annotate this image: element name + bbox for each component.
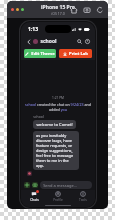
button[interactable] — [21, 8, 24, 11]
staticText: Send a message... — [43, 183, 77, 188]
button[interactable]: Print Lab — [59, 49, 92, 58]
staticText: Chats — [30, 198, 39, 202]
button[interactable]: Add attachment — [24, 182, 30, 188]
button[interactable]: Home — [70, 6, 78, 14]
staticText: Edit Theme — [31, 51, 55, 57]
staticText: Tools — [79, 198, 87, 202]
button[interactable] — [11, 8, 14, 11]
button[interactable]: Search — [76, 38, 83, 45]
staticText: 1:21 PM — [52, 96, 64, 100]
button[interactable]: Edit Theme — [24, 49, 56, 58]
staticText: welcome to Comet! — [36, 122, 73, 127]
button[interactable]: as you inevitably discover bugs, have fe… — [33, 131, 79, 170]
button[interactable]: Reaction — [27, 171, 32, 176]
button[interactable]: Tools — [71, 190, 95, 203]
button[interactable]: Chats — [22, 190, 46, 203]
staticText: as you inevitably discover bugs, have fe… — [36, 133, 76, 168]
button[interactable]: Profile — [46, 190, 70, 203]
button[interactable]: Rotate — [96, 6, 104, 14]
staticText: iPhone 15 Pro — [41, 4, 75, 11]
button[interactable]: Screenshot — [83, 6, 91, 14]
button[interactable]: Send a message... — [40, 181, 92, 189]
staticText: school — [33, 114, 44, 119]
button[interactable]: Back — [25, 38, 32, 45]
staticText: school created the chat on 9/24/23 and a… — [24, 102, 92, 112]
button[interactable] — [16, 8, 19, 11]
button[interactable]: Members — [84, 38, 91, 45]
staticText: school — [40, 38, 57, 45]
staticText: Profile — [53, 198, 63, 202]
button[interactable]: Camera — [32, 182, 38, 188]
staticText: iOS 17.0 — [51, 11, 65, 16]
button[interactable]: welcome to Comet! — [33, 120, 76, 129]
staticText: 1:13 — [28, 26, 38, 33]
staticText: Print Lab — [69, 51, 88, 57]
